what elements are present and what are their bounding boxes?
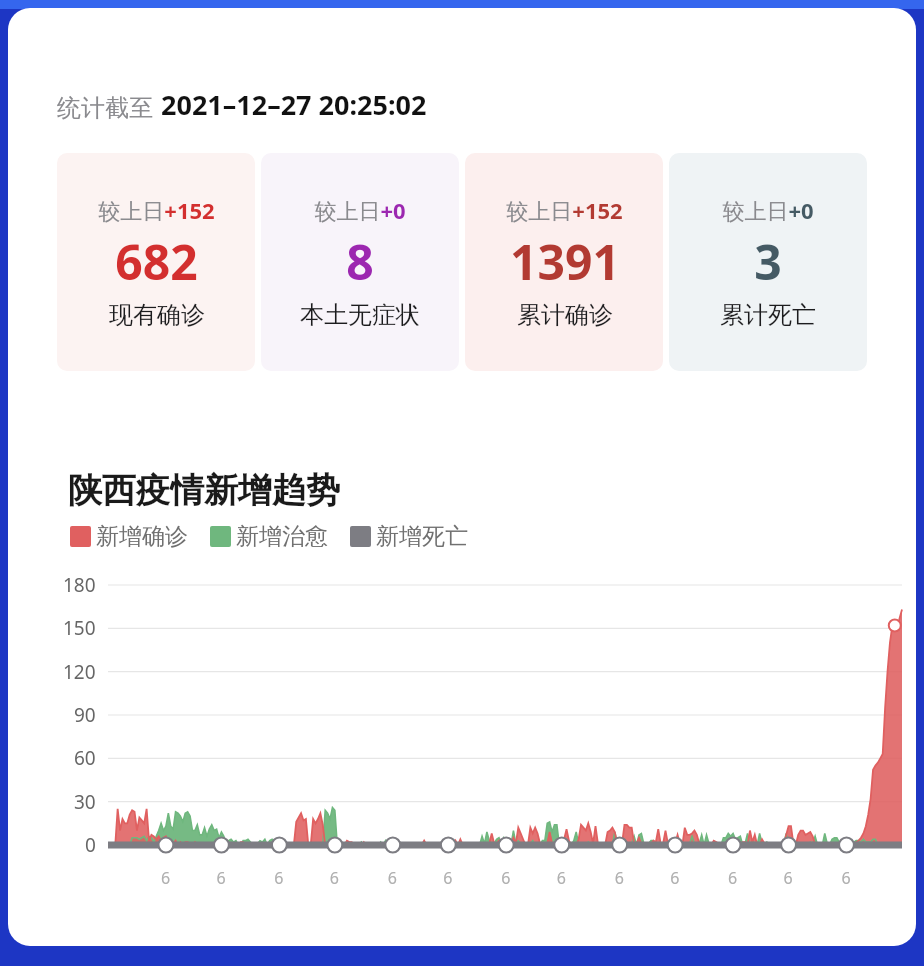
staticText: 累计确诊 (517, 300, 613, 330)
staticText: 8 (346, 229, 374, 294)
staticText: 现有确诊 (109, 300, 205, 330)
staticText: 682 (115, 229, 198, 294)
staticText: 较上日+152 (98, 195, 215, 225)
staticText: 较上日+152 (506, 195, 623, 225)
button[interactable]: 较上日+0 (669, 153, 867, 371)
staticText: 新增治愈 (236, 522, 328, 551)
staticText: 统计截至 (57, 93, 153, 123)
staticText: 3 (754, 229, 782, 294)
button[interactable]: 较上日+0 (261, 153, 459, 371)
button[interactable]: 较上日+152 (57, 153, 255, 371)
staticText: 较上日+0 (314, 195, 406, 225)
staticText: 2021–12–27 20:25:02 (161, 86, 427, 123)
staticText: 本土无症状 (300, 300, 420, 330)
staticText: 较上日+0 (722, 195, 814, 225)
staticText: 累计死亡 (720, 300, 816, 330)
staticText: 陕西疫情新增趋势 (68, 469, 340, 512)
staticText: 1391 (510, 229, 620, 294)
staticText: 新增死亡 (376, 522, 468, 551)
staticText: 新增确诊 (96, 522, 188, 551)
button[interactable]: 较上日+152 (465, 153, 663, 371)
